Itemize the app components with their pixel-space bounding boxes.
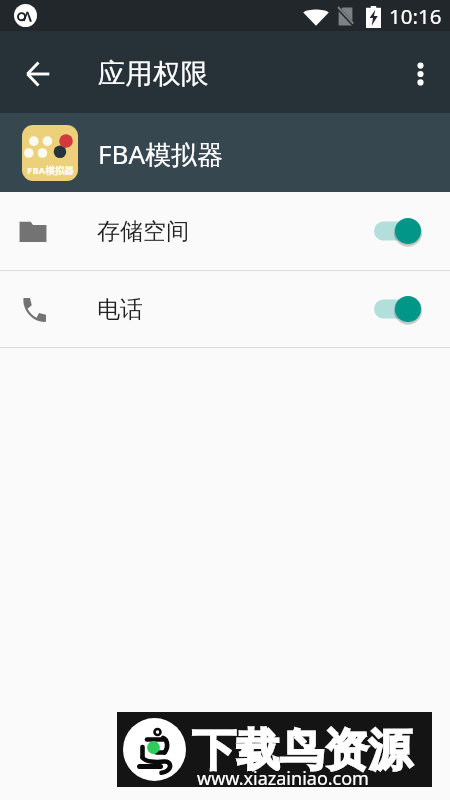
staticText: FBA模拟器: [98, 136, 224, 172]
button[interactable]: FBA模拟器: [0, 113, 450, 192]
staticText: FBA模拟器: [27, 164, 74, 177]
button[interactable]: Toggle permission: [369, 289, 427, 329]
staticText: 下载鸟资源: [192, 723, 412, 778]
staticText: 存储空间: [97, 217, 189, 246]
staticText: 电话: [97, 295, 143, 324]
button[interactable]: 存储空间: [0, 192, 450, 270]
button[interactable]: Back: [14, 50, 62, 98]
button[interactable]: 电话: [0, 271, 450, 347]
staticText: 10:16: [389, 2, 442, 30]
button[interactable]: Toggle permission: [369, 211, 427, 251]
staticText: www.xiazainiao.com: [197, 766, 369, 791]
staticText: 应用权限: [98, 57, 208, 92]
button[interactable]: More options: [396, 50, 444, 98]
